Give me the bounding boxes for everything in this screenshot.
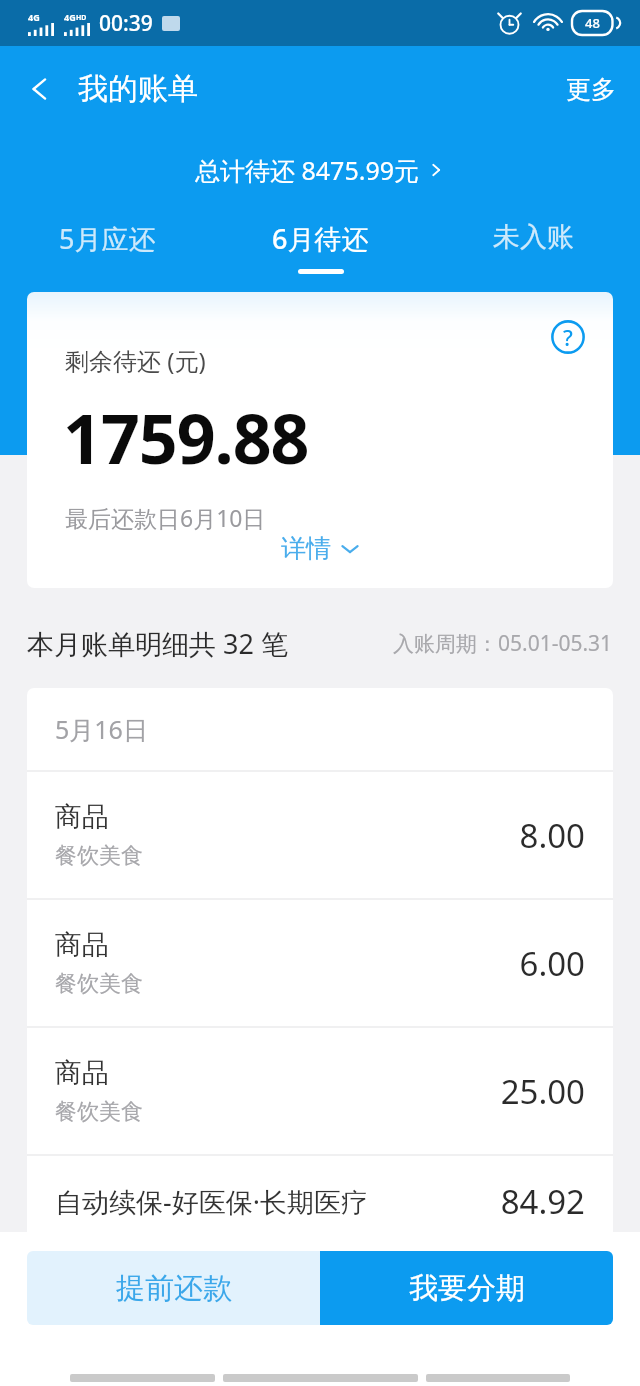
button[interactable]: 我要分期 [320, 1251, 613, 1325]
staticText: 8.00 [519, 813, 585, 858]
button[interactable]: 未入账 [427, 208, 640, 292]
staticText: 6.00 [519, 941, 585, 986]
staticText: 餐饮美食 [55, 970, 143, 998]
staticText: 我要分期 [409, 1270, 525, 1307]
staticText: 1759.88 [63, 391, 309, 484]
button[interactable]: 商品 [27, 900, 613, 1026]
staticText: 48 [585, 14, 600, 32]
button[interactable]: 总计待还 8475.99元 [181, 147, 460, 193]
staticText: 6月待还 [272, 220, 369, 257]
staticText: 更多 [566, 74, 616, 105]
button[interactable]: Back [0, 46, 66, 132]
staticText: 最后还款日6月10日 [65, 502, 266, 533]
staticText: 84.92 [500, 1179, 585, 1224]
button[interactable]: 我的账单 [78, 46, 198, 132]
staticText: 餐饮美食 [55, 842, 143, 870]
staticText: 提前还款 [116, 1270, 232, 1307]
staticText: 入账周期：05.01-05.31 [393, 629, 613, 658]
staticText: 商品 [55, 800, 109, 834]
staticText: 自动续保-好医保·长期医疗 [55, 1183, 368, 1220]
staticText: 我的账单 [78, 70, 198, 108]
button[interactable]: 6月待还 [214, 208, 427, 292]
staticText: 总计待还 8475.99元 [195, 153, 420, 187]
staticText: 剩余待还 (元) [65, 344, 206, 377]
button[interactable]: 商品 [27, 772, 613, 898]
staticText: 5月16日 [55, 712, 148, 746]
staticText: 00:39 [99, 9, 153, 38]
staticText: 商品 [55, 928, 109, 962]
staticText: 未入账 [493, 220, 574, 254]
staticText: 商品 [55, 1056, 109, 1090]
button[interactable]: 剩余待还 (元) [27, 292, 613, 588]
staticText: 详情 [281, 533, 331, 564]
button[interactable]: 5月16日 [27, 688, 613, 770]
button[interactable]: 提前还款 [27, 1251, 320, 1325]
staticText: 餐饮美食 [55, 1098, 143, 1126]
staticText: 4G [28, 11, 40, 23]
button[interactable]: 更多 [542, 46, 640, 132]
button[interactable]: 商品 [27, 1028, 613, 1154]
staticText: HD [76, 13, 87, 23]
staticText: ? [563, 322, 573, 352]
button[interactable]: Help [545, 314, 591, 360]
staticText: 25.00 [500, 1069, 585, 1114]
button[interactable]: 详情 [267, 527, 374, 570]
staticText: 5月应还 [59, 220, 156, 257]
button[interactable]: 5月应还 [0, 208, 214, 292]
staticText: 4G [64, 11, 76, 23]
staticText: 本月账单明细共 32 笔 [27, 625, 288, 662]
button[interactable]: 自动续保-好医保·长期医疗 [27, 1156, 613, 1246]
